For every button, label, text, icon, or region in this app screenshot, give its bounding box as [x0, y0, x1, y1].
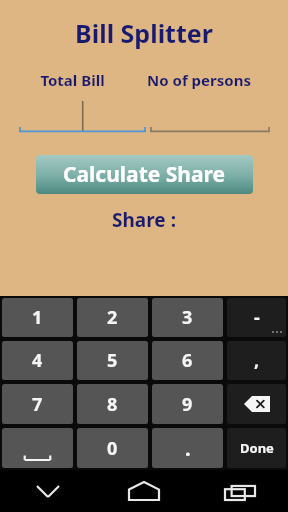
button[interactable]: Hide keyboard: [0, 470, 96, 512]
staticText: 6: [182, 348, 193, 373]
button[interactable]: 3: [152, 298, 223, 337]
staticText: 7: [32, 392, 43, 417]
button[interactable]: 6: [152, 341, 223, 380]
button[interactable]: Done: [227, 428, 286, 468]
staticText: 4: [32, 348, 43, 373]
button[interactable]: Recent apps: [192, 470, 288, 512]
button[interactable]: Home: [96, 470, 192, 512]
staticText: Calculate Share: [63, 160, 226, 189]
button[interactable]: 8: [77, 384, 148, 424]
button[interactable]: .: [152, 428, 223, 468]
staticText: 3: [182, 305, 193, 330]
staticText: Total Bill: [40, 70, 105, 90]
button[interactable]: 5: [77, 341, 148, 380]
button[interactable]: Calculate Share: [36, 155, 253, 194]
staticText: ,: [254, 348, 260, 373]
button[interactable]: 4: [2, 341, 73, 380]
staticText: 5: [107, 348, 118, 373]
button[interactable]: No of persons field: [150, 127, 270, 133]
staticText: Done: [240, 439, 274, 457]
staticText: 8: [107, 392, 118, 417]
staticText: 9: [182, 392, 193, 417]
button[interactable]: Total Bill field: [19, 127, 146, 133]
staticText: Bill Splitter: [0, 16, 288, 50]
staticText: 1: [32, 305, 43, 330]
button[interactable]: ,: [227, 341, 286, 380]
staticText: Share :: [0, 207, 288, 233]
button[interactable]: 1: [2, 298, 73, 337]
staticText: No of persons: [147, 70, 251, 90]
staticText: -: [254, 305, 260, 330]
button[interactable]: 9: [152, 384, 223, 424]
staticText: 2: [107, 305, 118, 330]
button[interactable]: 7: [2, 384, 73, 424]
button[interactable]: -: [227, 298, 286, 337]
button[interactable]: Space: [2, 428, 73, 468]
button[interactable]: Delete: [227, 384, 286, 424]
staticText: .: [185, 435, 191, 462]
staticText: 0: [107, 436, 118, 461]
button[interactable]: 0: [77, 428, 148, 468]
button[interactable]: 2: [77, 298, 148, 337]
